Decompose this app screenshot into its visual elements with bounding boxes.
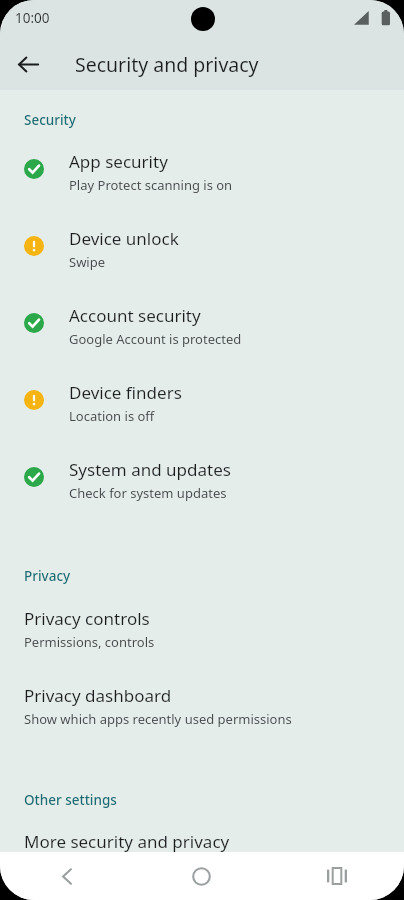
staticText: Device unlock — [69, 227, 179, 250]
button[interactable]: Home — [134, 852, 269, 900]
staticText: Location is off — [69, 407, 155, 425]
staticText: Google Account is protected — [69, 330, 242, 348]
staticText: 10:00 — [15, 9, 50, 27]
button[interactable]: Back — [8, 44, 48, 84]
staticText: Check for system updates — [69, 484, 227, 502]
button[interactable]: App security — [0, 150, 404, 227]
button[interactable]: Account security — [0, 304, 404, 381]
staticText: Privacy dashboard — [24, 684, 172, 707]
button[interactable]: Back — [0, 852, 134, 900]
staticText: More security and privacy — [24, 830, 230, 852]
staticText: Play Protect scanning is on — [69, 176, 233, 194]
staticText: Privacy — [24, 567, 71, 585]
staticText: Other settings — [24, 791, 117, 809]
staticText: Security — [24, 111, 76, 129]
button[interactable]: Recent apps — [269, 852, 404, 900]
button[interactable]: More security and privacy — [0, 830, 404, 852]
staticText: Security and privacy — [75, 51, 259, 78]
staticText: Swipe — [69, 253, 106, 271]
button[interactable]: Device unlock — [0, 227, 404, 304]
button[interactable]: System and updates — [0, 458, 404, 535]
button[interactable]: Privacy controls — [0, 607, 404, 684]
staticText: Show which apps recently used permission… — [24, 710, 292, 728]
staticText: System and updates — [69, 458, 231, 481]
button[interactable]: Privacy dashboard — [0, 684, 404, 761]
staticText: Account security — [69, 304, 201, 327]
staticText: Device finders — [69, 381, 182, 404]
staticText: App security — [69, 150, 168, 173]
staticText: Permissions, controls — [24, 633, 155, 651]
staticText: Privacy controls — [24, 607, 150, 630]
button[interactable]: Device finders — [0, 381, 404, 458]
